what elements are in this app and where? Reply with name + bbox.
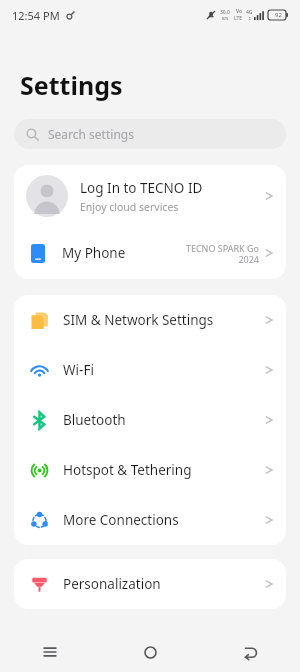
button[interactable]: Hotspot & Tethering bbox=[14, 445, 286, 495]
staticText: TECNO SPARK Go 2024 bbox=[185, 242, 259, 265]
button[interactable]: Home bbox=[100, 632, 200, 672]
staticText: Log In to TECNO ID bbox=[80, 179, 203, 197]
button[interactable]: SIM & Network Settings bbox=[14, 295, 286, 345]
staticText: 12:54 PM bbox=[12, 8, 60, 23]
button[interactable]: Recent apps bbox=[0, 632, 100, 672]
staticText: Vo bbox=[236, 8, 242, 15]
staticText: ↕ bbox=[248, 16, 252, 21]
staticText: Enjoy cloud services bbox=[80, 200, 179, 214]
button[interactable]: Log In to TECNO ID bbox=[14, 165, 286, 227]
staticText: Personalization bbox=[63, 575, 161, 593]
button[interactable]: My Phone bbox=[14, 227, 286, 279]
staticText: 4G bbox=[246, 9, 253, 16]
staticText: Bluetooth bbox=[63, 411, 126, 429]
staticText: 30.0 bbox=[220, 9, 230, 16]
button[interactable]: Personalization bbox=[14, 559, 286, 609]
staticText: More Connections bbox=[63, 511, 179, 529]
staticText: Search settings bbox=[48, 126, 134, 142]
button[interactable]: Bluetooth bbox=[14, 395, 286, 445]
button[interactable]: Back bbox=[200, 632, 300, 672]
button[interactable]: Wi-Fi bbox=[14, 345, 286, 395]
staticText: 92 bbox=[275, 11, 282, 19]
staticText: My Phone bbox=[62, 244, 126, 262]
staticText: SIM & Network Settings bbox=[63, 311, 214, 329]
staticText: LTE bbox=[234, 15, 243, 22]
staticText: Wi-Fi bbox=[63, 361, 94, 379]
staticText: Settings bbox=[20, 68, 123, 102]
button[interactable]: More Connections bbox=[14, 495, 286, 545]
staticText: B/S bbox=[222, 16, 229, 21]
staticText: Hotspot & Tethering bbox=[63, 461, 192, 479]
button[interactable]: Search settings bbox=[14, 119, 286, 149]
